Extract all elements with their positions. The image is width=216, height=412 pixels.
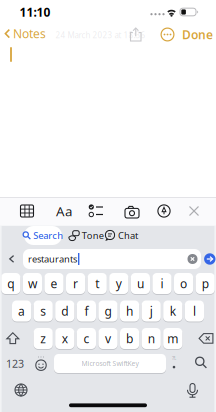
staticText: restaurants bbox=[28, 253, 77, 265]
button[interactable]: q bbox=[1, 273, 20, 294]
button[interactable]: m bbox=[163, 328, 182, 349]
staticText: p bbox=[202, 275, 209, 291]
staticText: 24 March 2023 at 18:36 bbox=[55, 30, 145, 40]
button[interactable] bbox=[19, 204, 34, 218]
button[interactable]: e bbox=[44, 273, 64, 294]
button[interactable]: z bbox=[34, 328, 53, 349]
staticText: Aa bbox=[56, 202, 72, 220]
staticText: m bbox=[167, 330, 178, 346]
staticText: w bbox=[28, 275, 37, 291]
button[interactable]: b bbox=[120, 328, 139, 349]
staticText: g bbox=[104, 303, 111, 319]
button[interactable]: n bbox=[142, 328, 161, 349]
button[interactable]: j bbox=[142, 300, 161, 321]
button[interactable]: o bbox=[174, 273, 193, 294]
staticText: a bbox=[18, 303, 25, 319]
staticText: r bbox=[73, 275, 78, 291]
button[interactable]: i bbox=[152, 273, 172, 294]
staticText: c bbox=[83, 330, 89, 346]
button[interactable] bbox=[195, 357, 206, 368]
staticText: Chat bbox=[118, 229, 138, 242]
staticText: Notes bbox=[13, 26, 46, 42]
button[interactable]: v bbox=[98, 328, 118, 349]
button[interactable]: h bbox=[120, 300, 139, 321]
button[interactable] bbox=[187, 383, 198, 398]
button[interactable]: g bbox=[98, 300, 118, 321]
button[interactable] bbox=[198, 333, 213, 344]
staticText: Done bbox=[182, 26, 213, 42]
staticText: b bbox=[126, 330, 133, 346]
staticText: k bbox=[170, 303, 176, 319]
button[interactable]: w bbox=[23, 273, 42, 294]
staticText: o bbox=[180, 275, 187, 291]
button[interactable]: l bbox=[185, 300, 204, 321]
button[interactable]: s bbox=[34, 300, 53, 321]
button[interactable] bbox=[130, 27, 141, 41]
button[interactable]: 123 bbox=[4, 354, 26, 373]
button[interactable]: Tone bbox=[70, 226, 102, 245]
button[interactable]: k bbox=[163, 300, 182, 321]
button[interactable]: f bbox=[77, 300, 96, 321]
staticText: 11:10 bbox=[19, 4, 50, 20]
button[interactable]: Done bbox=[181, 27, 213, 41]
button[interactable] bbox=[14, 383, 27, 396]
button[interactable]: Microsoft SwiftKey bbox=[54, 354, 166, 373]
staticText: n bbox=[148, 330, 155, 346]
button[interactable]: p bbox=[196, 273, 215, 294]
button[interactable] bbox=[189, 206, 199, 216]
staticText: j bbox=[150, 303, 153, 319]
button[interactable]: restaurants bbox=[23, 249, 201, 269]
staticText: z bbox=[40, 330, 46, 346]
button[interactable]: a bbox=[12, 300, 31, 321]
button[interactable]: u bbox=[131, 273, 150, 294]
staticText: l bbox=[193, 303, 196, 319]
button[interactable]: Chat bbox=[106, 226, 137, 245]
button[interactable]: x bbox=[55, 328, 74, 349]
staticText: Search bbox=[33, 229, 63, 242]
button[interactable] bbox=[157, 204, 170, 217]
staticText: e bbox=[50, 275, 57, 291]
staticText: Microsoft SwiftKey bbox=[81, 359, 138, 368]
staticText: v bbox=[105, 330, 111, 346]
staticText: 123 bbox=[6, 356, 24, 371]
staticText: x bbox=[62, 330, 68, 346]
button[interactable] bbox=[160, 27, 174, 41]
staticText: u bbox=[137, 275, 144, 291]
button[interactable]: Aa bbox=[56, 204, 72, 218]
button[interactable]: Notes bbox=[3, 27, 41, 41]
staticText: h bbox=[126, 303, 133, 319]
button[interactable]: c bbox=[77, 328, 96, 349]
staticText: q bbox=[7, 275, 14, 291]
staticText: t bbox=[95, 275, 99, 291]
button[interactable] bbox=[204, 253, 216, 265]
staticText: ?!. bbox=[172, 354, 176, 362]
staticText: s bbox=[40, 303, 46, 319]
button[interactable]: r bbox=[66, 273, 85, 294]
button[interactable] bbox=[124, 204, 139, 218]
staticText: Tone bbox=[82, 229, 104, 242]
button[interactable]: Search bbox=[24, 226, 62, 245]
staticText: f bbox=[84, 303, 88, 319]
button[interactable] bbox=[187, 254, 197, 264]
button[interactable] bbox=[9, 255, 15, 263]
staticText: y bbox=[116, 275, 122, 291]
button[interactable]: d bbox=[55, 300, 74, 321]
button[interactable]: ?!. bbox=[167, 354, 181, 370]
button[interactable]: y bbox=[109, 273, 128, 294]
button[interactable] bbox=[33, 355, 49, 371]
button[interactable]: t bbox=[88, 273, 107, 294]
staticText: i bbox=[160, 275, 163, 291]
staticText: d bbox=[61, 303, 68, 319]
button[interactable] bbox=[88, 204, 104, 218]
button[interactable] bbox=[6, 332, 20, 345]
